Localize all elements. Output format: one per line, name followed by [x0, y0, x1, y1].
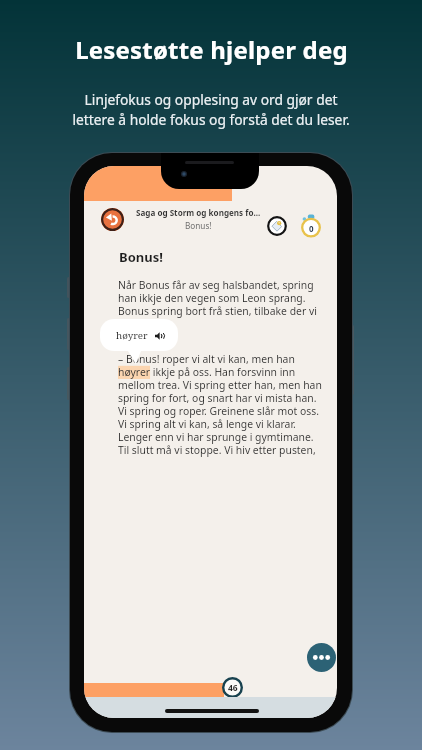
button[interactable]: høyrer: [100, 319, 178, 351]
staticText: Bonus!: [119, 248, 163, 266]
button[interactable]: Back: [101, 208, 124, 231]
staticText: Linjefokus og opplesing av ord gjør det …: [72, 90, 350, 129]
staticText: Bonus!: [185, 220, 212, 231]
staticText: Saga og Storm og kongens fo...: [136, 207, 261, 218]
staticText: 46: [228, 682, 238, 694]
staticText: Lesestøtte hjelper deg: [75, 33, 348, 66]
button[interactable]: Tags: [267, 216, 287, 236]
staticText: – Bonus! roper vi alt vi kan, men han hø…: [118, 352, 322, 457]
staticText: høyrer: [116, 329, 148, 342]
staticText: 0: [309, 223, 314, 234]
button[interactable]: Timer: [299, 215, 323, 239]
button[interactable]: More options: [307, 643, 336, 672]
staticText: Når Bonus får av seg halsbandet, spring …: [118, 278, 317, 318]
